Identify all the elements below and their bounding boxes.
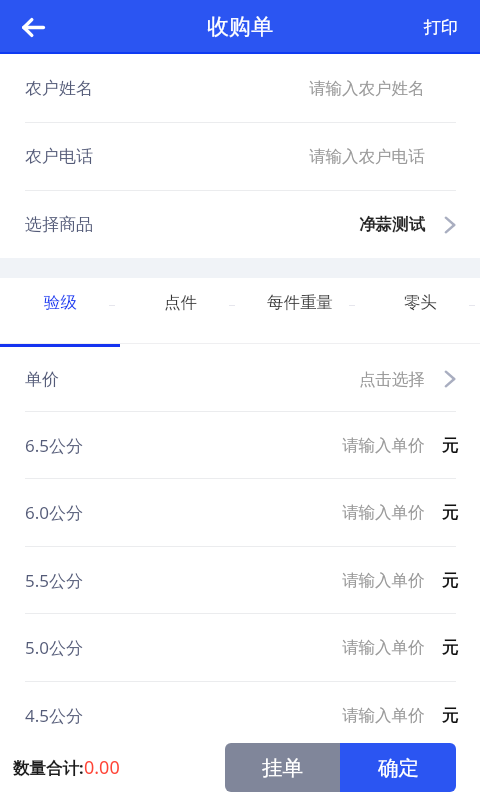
staticText: 4.5公分 (25, 704, 84, 727)
button[interactable]: 5.5公分 (0, 547, 480, 613)
button[interactable]: 点件 (120, 278, 240, 326)
staticText: 5.5公分 (25, 569, 84, 592)
button[interactable]: 农户姓名 (0, 54, 480, 122)
staticText: 零头 (404, 292, 437, 313)
staticText: 元 (442, 435, 458, 456)
staticText: 元 (442, 637, 458, 658)
button[interactable]: 零头 (360, 278, 480, 326)
staticText: 确定 (378, 755, 419, 781)
staticText: 数量合计: (13, 756, 84, 779)
button[interactable]: 4.5公分 (0, 682, 480, 749)
staticText: 请输入单价 (342, 502, 425, 523)
button[interactable]: Back (0, 0, 66, 54)
staticText: 6.5公分 (25, 434, 84, 457)
staticText: 净蒜测试 (359, 214, 425, 235)
staticText: 请输入单价 (342, 570, 425, 591)
button[interactable]: 每件重量 (240, 278, 360, 326)
staticText: 0.00 (84, 755, 120, 780)
staticText: 农户姓名 (25, 78, 93, 99)
staticText: 选择商品 (25, 214, 93, 235)
button[interactable]: 农户电话 (0, 123, 480, 190)
staticText: 每件重量 (267, 292, 333, 313)
button[interactable]: 挂单 (225, 743, 340, 792)
staticText: 农户电话 (25, 146, 93, 167)
staticText: 请输入农户电话 (309, 146, 425, 167)
staticText: 元 (442, 570, 458, 591)
staticText: 请输入单价 (342, 637, 425, 658)
staticText: 5.0公分 (25, 636, 84, 659)
staticText: 元 (442, 705, 458, 726)
button[interactable]: 单价 (0, 347, 480, 411)
staticText: 点件 (164, 292, 197, 313)
button[interactable]: 6.0公分 (0, 479, 480, 546)
button[interactable]: 打印 (400, 0, 480, 54)
staticText: 请输入单价 (342, 705, 425, 726)
staticText: 请输入农户姓名 (309, 78, 425, 99)
staticText: 打印 (424, 17, 458, 38)
staticText: 点击选择 (359, 369, 425, 390)
staticText: 收购单 (207, 13, 273, 41)
button[interactable]: 验级 (0, 278, 120, 326)
staticText: 验级 (44, 292, 77, 313)
button[interactable]: 确定 (340, 743, 456, 792)
staticText: 6.0公分 (25, 501, 84, 524)
staticText: 单价 (25, 369, 59, 390)
staticText: 元 (442, 502, 458, 523)
button[interactable]: 6.5公分 (0, 412, 480, 478)
button[interactable]: 5.0公分 (0, 614, 480, 681)
button[interactable]: 选择商品 (0, 191, 480, 258)
staticText: 请输入单价 (342, 435, 425, 456)
staticText: 挂单 (262, 755, 303, 781)
